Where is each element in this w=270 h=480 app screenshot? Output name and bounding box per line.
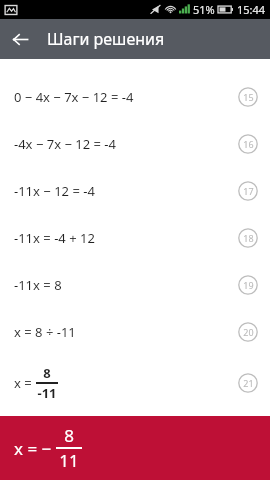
staticText: 20 xyxy=(243,326,254,338)
staticText: x = xyxy=(14,374,36,392)
staticText: 18 xyxy=(243,232,254,244)
staticText: 21 xyxy=(243,377,254,389)
button[interactable]: x = 8 ÷ -11 xyxy=(0,308,270,355)
staticText: 0 − 4x − 7x − 12 = -4 xyxy=(14,88,134,106)
button[interactable]: -11x = -4 + 12 xyxy=(0,214,270,261)
staticText: x = 8 ÷ -11 xyxy=(14,323,76,341)
button[interactable]: -4x − 7x − 12 = -4 xyxy=(0,120,270,167)
staticText: 15 xyxy=(243,91,254,103)
staticText: 51% xyxy=(193,2,215,17)
staticText: Шаги решения xyxy=(47,28,165,50)
staticText: -11x = 8 xyxy=(14,276,62,294)
staticText: 11 xyxy=(59,449,79,472)
button[interactable]: x = − xyxy=(0,416,270,480)
staticText: 15:44 xyxy=(237,2,266,17)
staticText: 19 xyxy=(243,279,254,291)
button[interactable]: Back xyxy=(0,19,40,59)
staticText: -11 xyxy=(37,384,57,402)
staticText: 16 xyxy=(243,138,254,150)
staticText: -11x = -4 + 12 xyxy=(14,229,95,247)
button[interactable]: 0 − 4x − 7x − 12 = -4 xyxy=(0,73,270,120)
staticText: -11x − 12 = -4 xyxy=(14,182,95,200)
staticText: 8 xyxy=(64,424,74,447)
staticText: -4x − 7x − 12 = -4 xyxy=(14,135,116,153)
button[interactable]: -11x − 12 = -4 xyxy=(0,167,270,214)
staticText: x = − xyxy=(14,437,56,460)
button[interactable]: x = xyxy=(0,355,270,411)
button[interactable]: -11x = 8 xyxy=(0,261,270,308)
staticText: 17 xyxy=(243,185,254,197)
staticText: 8 xyxy=(43,364,51,382)
